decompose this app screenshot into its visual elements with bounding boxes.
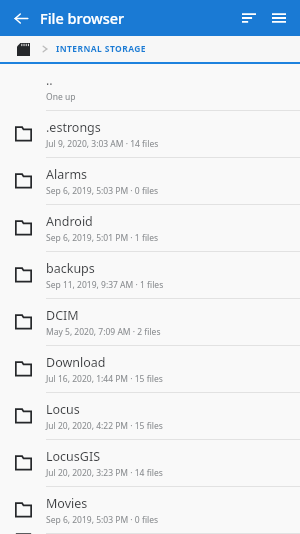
staticText: May 5, 2020, 7:09 AM · 2 files: [46, 326, 161, 338]
button[interactable]: Storage root: [14, 40, 32, 58]
button[interactable]: Download: [0, 346, 300, 392]
button[interactable]: Alarms: [0, 158, 300, 204]
button[interactable]: Menu: [264, 3, 294, 33]
staticText: Locus: [46, 401, 80, 418]
button[interactable]: backups: [0, 252, 300, 298]
button[interactable]: Android: [0, 205, 300, 251]
staticText: INTERNAL STORAGE: [56, 43, 146, 55]
staticText: Download: [46, 354, 106, 371]
staticText: Sep 6, 2019, 5:03 PM · 0 files: [46, 514, 159, 526]
button[interactable]: LocusGIS: [0, 440, 300, 486]
button[interactable]: .estrongs: [0, 111, 300, 157]
staticText: backups: [46, 260, 95, 277]
button[interactable]: Locus: [0, 393, 300, 439]
staticText: File browser: [40, 8, 125, 28]
staticText: LocusGIS: [46, 448, 101, 465]
button[interactable]: INTERNAL STORAGE: [56, 43, 146, 55]
button[interactable]: DCIM: [0, 299, 300, 345]
staticText: Movies: [46, 495, 88, 512]
button[interactable]: Back: [8, 5, 34, 31]
staticText: .estrongs: [46, 119, 101, 136]
staticText: Sep 6, 2019, 5:01 PM · 1 files: [46, 232, 159, 244]
button[interactable]: Sort: [234, 3, 264, 33]
staticText: Jul 20, 2020, 4:22 PM · 15 files: [46, 420, 163, 432]
staticText: Jul 20, 2020, 3:23 PM · 14 files: [46, 467, 163, 479]
staticText: Android: [46, 213, 93, 230]
staticText: Jul 16, 2020, 1:44 PM · 15 files: [46, 373, 163, 385]
button[interactable]: Movies: [0, 487, 300, 533]
staticText: Alarms: [46, 166, 88, 183]
staticText: DCIM: [46, 307, 79, 324]
staticText: Sep 11, 2019, 9:37 AM · 1 files: [46, 279, 164, 291]
staticText: ..: [46, 72, 53, 89]
staticText: One up: [46, 91, 76, 103]
staticText: Sep 6, 2019, 5:03 PM · 0 files: [46, 185, 159, 197]
staticText: Jul 9, 2020, 3:03 AM · 14 files: [46, 138, 159, 150]
button[interactable]: ..: [0, 64, 300, 110]
